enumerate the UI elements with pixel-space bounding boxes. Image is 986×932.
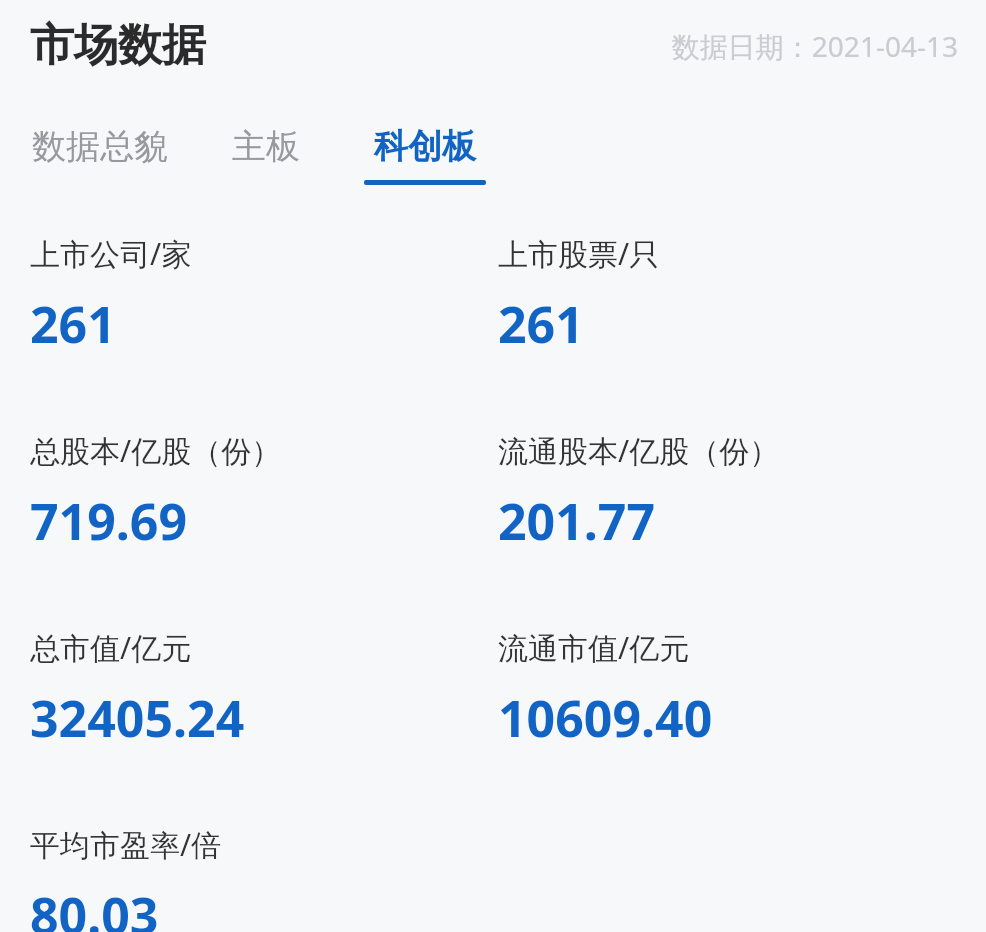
- button[interactable]: 总股本/亿股（份）: [30, 430, 498, 555]
- staticText: 10609.40: [498, 684, 713, 752]
- button[interactable]: 主板: [230, 125, 302, 185]
- button[interactable]: 流通股本/亿股（份）: [498, 430, 962, 555]
- staticText: 数据总貌: [32, 125, 168, 168]
- staticText: 流通市值/亿元: [498, 627, 690, 668]
- button[interactable]: 科创板: [362, 125, 488, 185]
- button[interactable]: 流通市值/亿元: [498, 627, 962, 752]
- staticText: 总市值/亿元: [30, 627, 192, 668]
- staticText: 平均市盈率/倍: [30, 824, 222, 865]
- staticText: 32405.24: [30, 684, 245, 752]
- staticText: 201.77: [498, 487, 656, 555]
- button[interactable]: 数据总貌: [30, 125, 170, 185]
- staticText: 科创板: [374, 125, 476, 168]
- button[interactable]: 总市值/亿元: [30, 627, 498, 752]
- staticText: 261: [498, 290, 584, 358]
- staticText: 上市股票/只: [498, 233, 660, 274]
- button[interactable]: 上市公司/家: [30, 233, 498, 358]
- button[interactable]: 平均市盈率/倍: [30, 824, 498, 932]
- staticText: 80.03: [30, 881, 159, 932]
- staticText: 261: [30, 290, 116, 358]
- staticText: 主板: [232, 125, 300, 168]
- staticText: 719.69: [30, 487, 188, 555]
- staticText: 总股本/亿股（份）: [30, 430, 282, 471]
- staticText: 市场数据: [30, 18, 206, 73]
- staticText: 数据日期：2021-04-13: [671, 27, 958, 65]
- button[interactable]: 上市股票/只: [498, 233, 962, 358]
- staticText: 流通股本/亿股（份）: [498, 430, 780, 471]
- staticText: 上市公司/家: [30, 233, 192, 274]
